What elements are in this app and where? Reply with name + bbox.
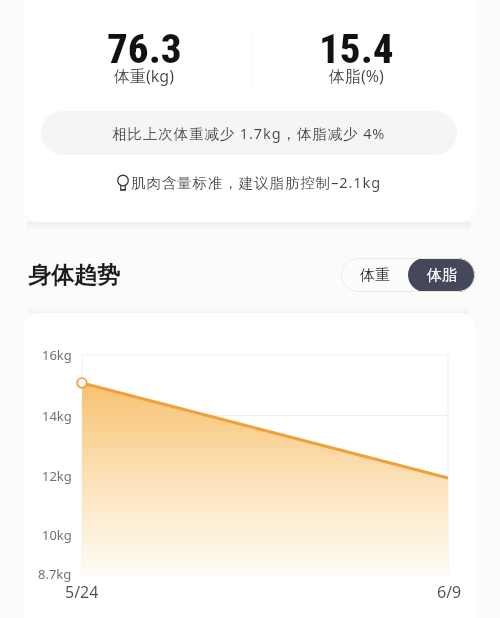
staticText: 15.4 [319, 25, 394, 73]
staticText: 12kg [42, 467, 72, 485]
staticText: 体脂 [427, 266, 457, 285]
staticText: 5/24 [65, 581, 99, 603]
button[interactable]: 相比上次体重减少 1.7kg，体脂减少 4% [41, 111, 457, 155]
staticText: 14kg [42, 407, 72, 425]
other: Tip [117, 175, 129, 190]
staticText: 肌肉含量标准，建议脂肪控制–2.1kg [131, 172, 381, 192]
staticText: 10kg [42, 526, 72, 544]
staticText: 8.7kg [38, 565, 72, 583]
staticText: 相比上次体重减少 1.7kg，体脂减少 4% [112, 123, 386, 143]
button[interactable]: 15.4 [246, 25, 466, 85]
staticText: 体重 [360, 266, 390, 285]
staticText: 身体趋势 [28, 261, 120, 290]
staticText: 体脂(%) [329, 65, 384, 87]
button[interactable]: 76.3 [34, 25, 254, 85]
button[interactable]: 体重 [341, 258, 408, 292]
button[interactable]: 体脂 [408, 258, 475, 292]
staticText: 体重(kg) [114, 65, 174, 87]
staticText: 6/9 [437, 581, 462, 603]
staticText: 16kg [42, 346, 72, 364]
staticText: 76.3 [107, 25, 182, 73]
